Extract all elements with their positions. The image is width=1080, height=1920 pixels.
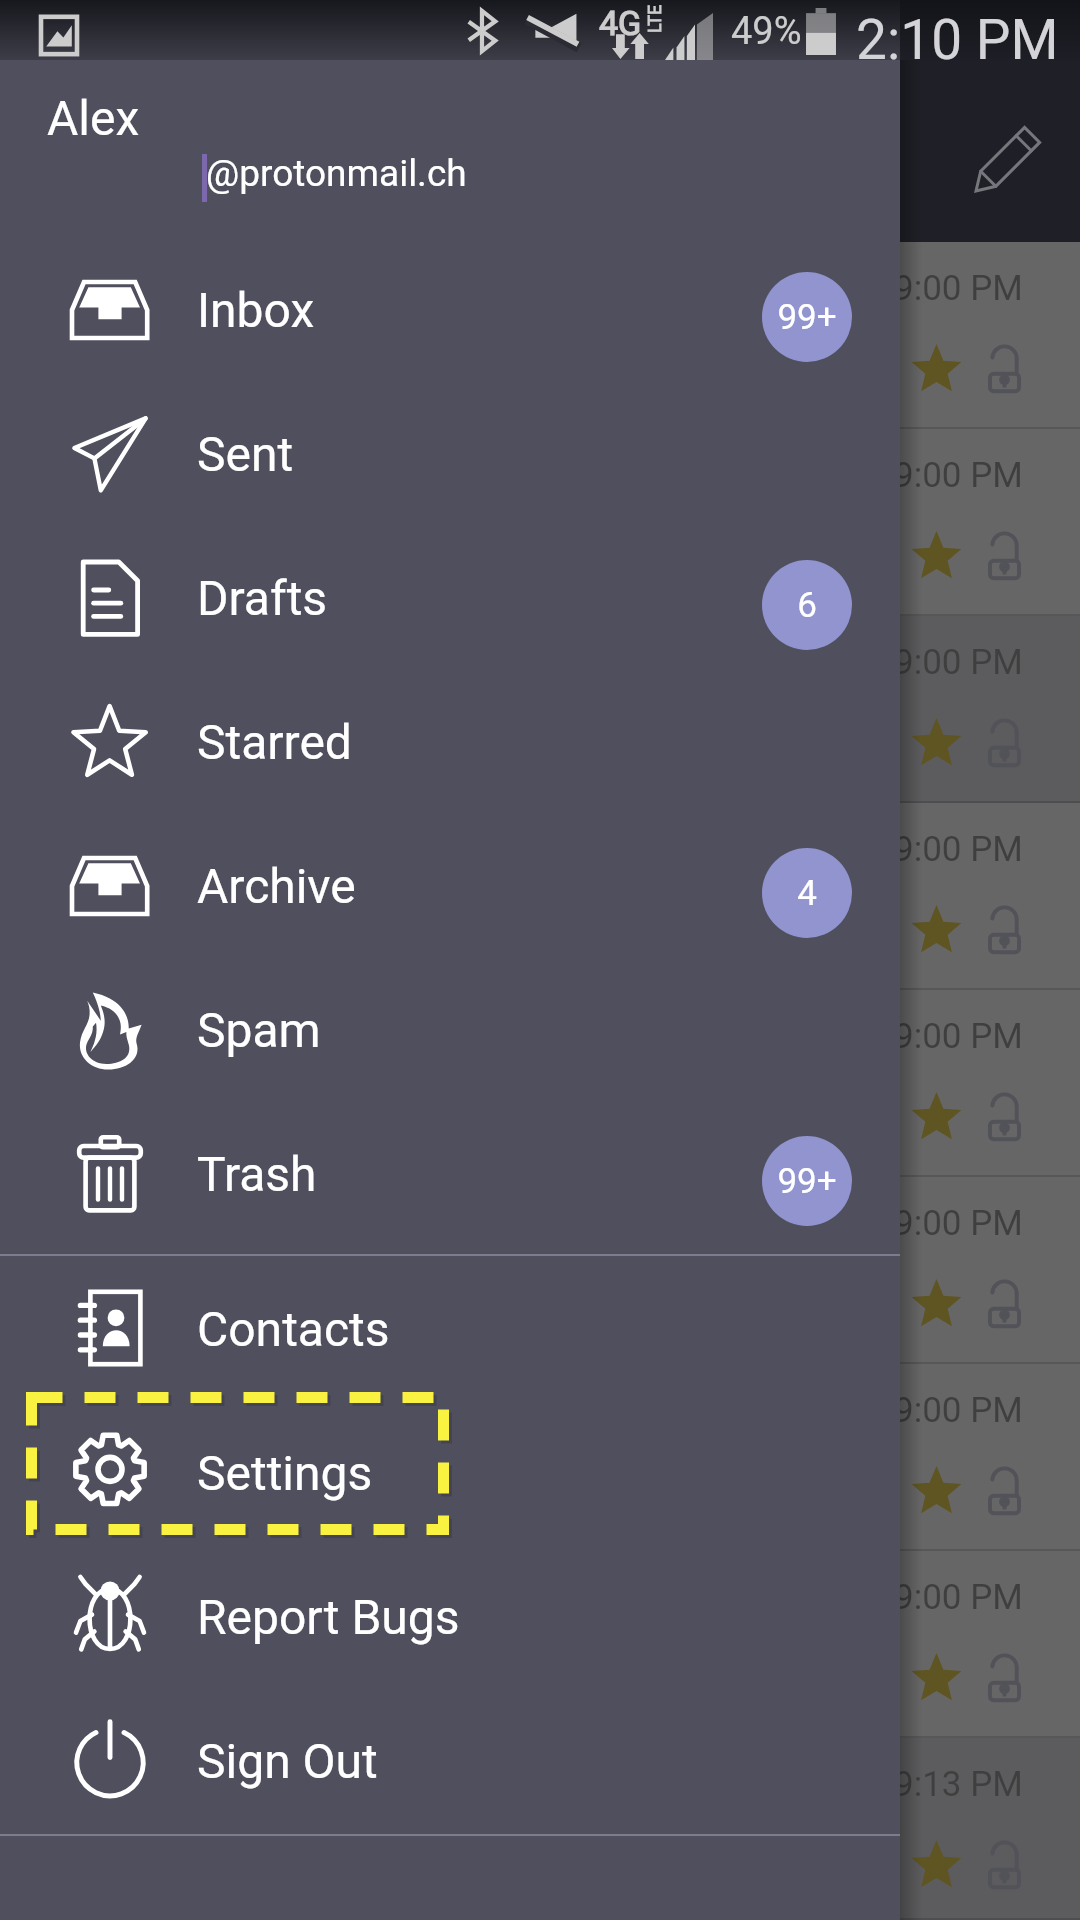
staticText: Archive	[197, 858, 356, 914]
staticText: Trash	[197, 1146, 317, 1202]
button[interactable]: Report Bugs	[0, 1545, 900, 1689]
staticText: LTE	[644, 4, 665, 33]
button[interactable]: Inbox	[0, 238, 900, 382]
staticText: 9:00 PM	[894, 1203, 1023, 1244]
button[interactable]: 9:00 PM	[0, 429, 1080, 616]
staticText: @protonmail.ch	[206, 152, 467, 195]
staticText: 9:00 PM	[894, 1390, 1023, 1431]
button[interactable]: Settings	[0, 1401, 900, 1545]
staticText: Report Bugs	[197, 1589, 460, 1645]
button[interactable]: 9:00 PM	[0, 1551, 1080, 1738]
button[interactable]: Alex	[0, 60, 900, 238]
button[interactable]: Sent	[0, 382, 900, 526]
staticText: 9:00 PM	[894, 1016, 1023, 1057]
button[interactable]: Starred	[0, 670, 900, 814]
staticText: 99+	[777, 297, 837, 338]
button[interactable]: 9:00 PM	[0, 990, 1080, 1177]
staticText: 9:00 PM	[894, 642, 1023, 683]
staticText: Alex	[47, 90, 140, 146]
button[interactable]: Contacts	[0, 1257, 900, 1401]
button[interactable]: Spam	[0, 958, 900, 1102]
button[interactable]: 9:00 PM	[0, 803, 1080, 990]
staticText: Spam	[197, 1002, 321, 1058]
staticText: Sign Out	[197, 1733, 378, 1789]
staticText: 9:13 PM	[894, 1764, 1023, 1805]
button[interactable]: Sign Out	[0, 1689, 900, 1833]
staticText: 9:00 PM	[894, 1577, 1023, 1618]
button[interactable]: Drafts	[0, 526, 900, 670]
staticText: 6	[797, 585, 817, 626]
staticText: Inbox	[197, 282, 315, 338]
staticText: Drafts	[197, 570, 328, 626]
staticText: 2:10 PM	[856, 8, 1059, 68]
button[interactable]: Archive	[0, 814, 900, 958]
staticText: 9:00 PM	[894, 268, 1023, 309]
staticText: 4G	[599, 3, 642, 43]
staticText: 4	[797, 873, 817, 914]
staticText: 49%	[731, 9, 802, 54]
button[interactable]: 9:00 PM	[0, 1177, 1080, 1364]
button[interactable]: 9:00 PM	[0, 616, 1080, 803]
staticText: Sent	[197, 426, 294, 482]
button[interactable]: 9:13 PM	[0, 1738, 1080, 1920]
staticText: Settings	[197, 1445, 373, 1501]
staticText: Starred	[197, 714, 352, 770]
staticText: 9:00 PM	[894, 455, 1023, 496]
staticText: 9:00 PM	[894, 829, 1023, 870]
button[interactable]: Compose	[947, 97, 1069, 219]
button[interactable]: 9:00 PM	[0, 1364, 1080, 1551]
button[interactable]: Trash	[0, 1102, 900, 1246]
button[interactable]: 9:00 PM	[0, 242, 1080, 429]
staticText: 99+	[777, 1161, 837, 1202]
staticText: Contacts	[197, 1301, 390, 1357]
